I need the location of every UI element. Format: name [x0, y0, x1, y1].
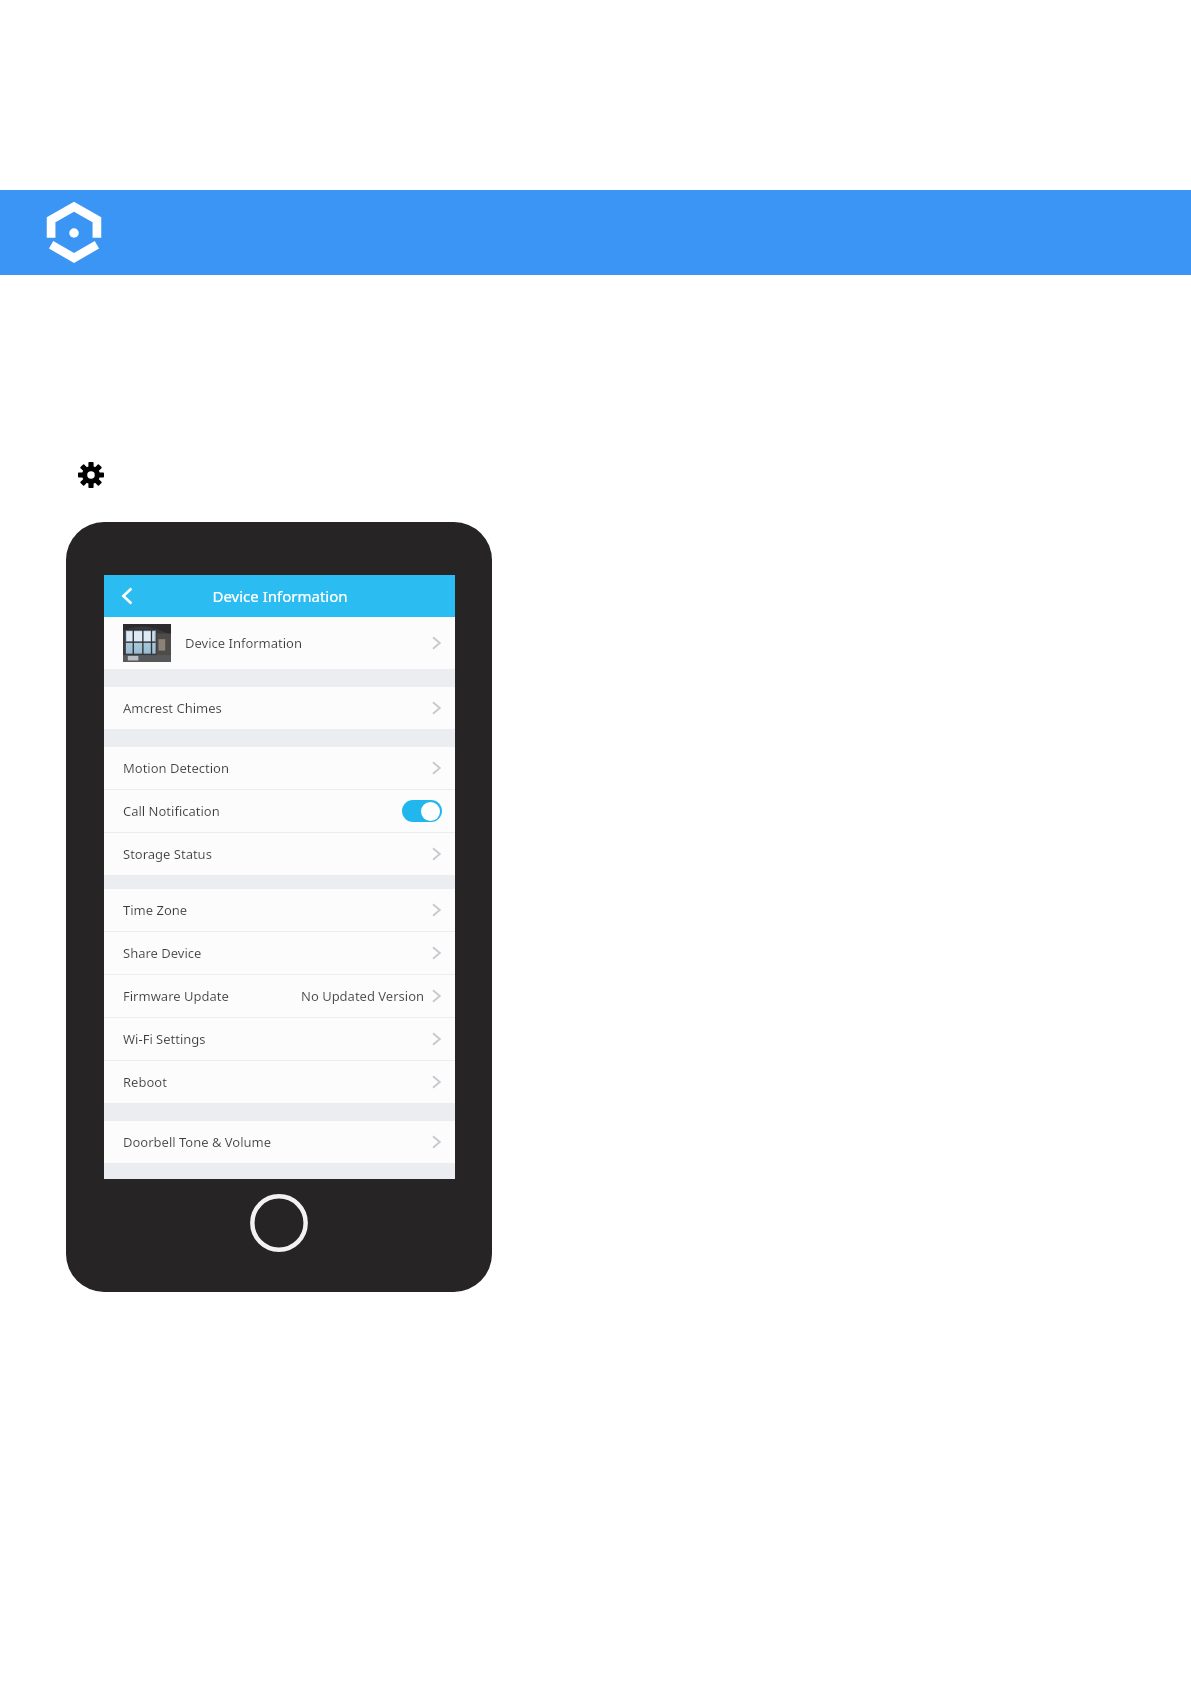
button[interactable]: Time Zone — [104, 889, 455, 931]
staticText: Time Zone — [123, 901, 188, 919]
button[interactable]: Call Notification — [104, 790, 455, 832]
button[interactable]: Device Information — [104, 617, 455, 669]
staticText: Motion Detection — [123, 759, 230, 777]
staticText: Doorbell Tone & Volume — [123, 1133, 272, 1151]
staticText: Device Information — [212, 586, 348, 606]
button[interactable]: Home — [248, 1192, 310, 1254]
staticText: Amcrest Chimes — [123, 699, 222, 717]
button[interactable]: Settings — [78, 462, 104, 488]
button[interactable]: Firmware Update — [104, 975, 455, 1017]
other: Amcrest logo — [46, 205, 102, 261]
button[interactable]: Back — [104, 575, 150, 617]
staticText: Call Notification — [123, 802, 220, 820]
staticText: Device Information — [185, 634, 303, 652]
button[interactable]: Call Notification toggle — [402, 800, 442, 822]
button[interactable]: Storage Status — [104, 833, 455, 875]
staticText: Storage Status — [123, 845, 212, 863]
staticText: Reboot — [123, 1073, 167, 1091]
button[interactable]: Wi-Fi Settings — [104, 1018, 455, 1060]
staticText: Wi-Fi Settings — [123, 1030, 206, 1048]
button[interactable]: Reboot — [104, 1061, 455, 1103]
button[interactable]: Amcrest Chimes — [104, 687, 455, 729]
button[interactable]: Motion Detection — [104, 747, 455, 789]
button[interactable]: Share Device — [104, 932, 455, 974]
button[interactable]: Doorbell Tone & Volume — [104, 1121, 455, 1163]
staticText: Share Device — [123, 944, 202, 962]
staticText: Firmware Update — [123, 987, 229, 1005]
staticText: No Updated Version — [301, 987, 425, 1005]
